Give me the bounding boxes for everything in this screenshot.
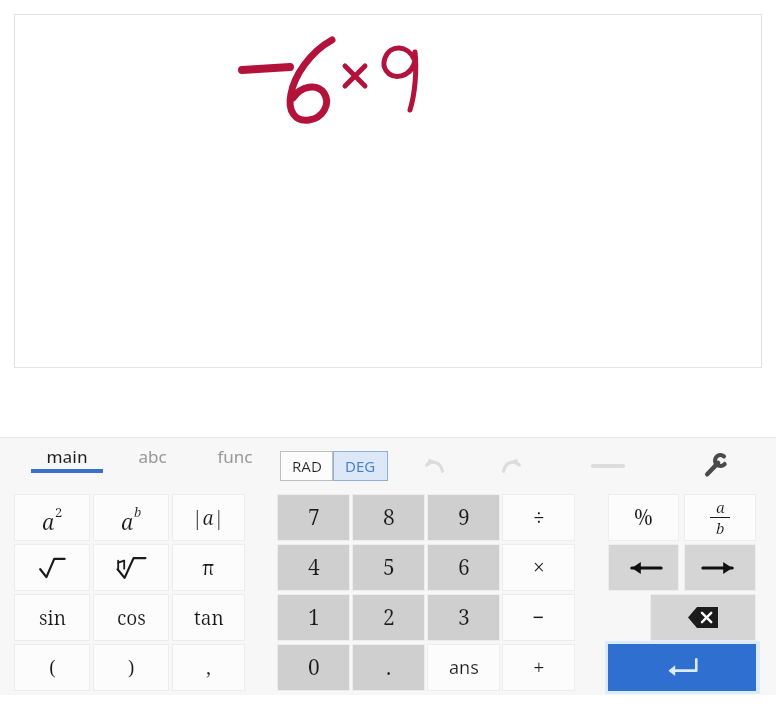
staticText: b (716, 518, 725, 538)
button[interactable]: Settings (690, 449, 740, 483)
button[interactable]: a (684, 494, 756, 541)
staticText: |a| (192, 505, 225, 531)
staticText: ans (449, 655, 479, 680)
button[interactable]: Backspace (650, 594, 756, 641)
staticText: func (217, 445, 253, 468)
button[interactable]: a (93, 494, 169, 541)
staticText: main (46, 445, 88, 468)
staticText: RAD (292, 456, 322, 476)
button[interactable]: . (352, 644, 425, 691)
button[interactable]: DEG (333, 451, 388, 481)
button[interactable]: % (608, 494, 679, 541)
button[interactable]: 3 (427, 594, 500, 641)
button[interactable]: ÷ (502, 494, 575, 541)
button[interactable]: 2 (352, 594, 425, 641)
staticText: 8 (383, 503, 395, 532)
button[interactable]: a (14, 494, 90, 541)
staticText: + (533, 653, 545, 682)
button[interactable]: ans (427, 644, 500, 691)
staticText: a (121, 508, 134, 537)
staticText: π (202, 555, 215, 581)
staticText: 1 (308, 603, 320, 632)
staticText: − (532, 603, 545, 632)
button[interactable]: 8 (352, 494, 425, 541)
staticText: × (533, 553, 545, 582)
button[interactable]: sin (14, 594, 90, 641)
staticText: cos (117, 605, 146, 631)
button[interactable]: main (30, 443, 104, 489)
button[interactable]: cos (93, 594, 169, 641)
staticText: 4 (308, 553, 320, 582)
button[interactable]: ( (14, 644, 90, 691)
button[interactable] (93, 544, 169, 591)
button[interactable]: Enter (608, 644, 756, 691)
staticText: 5 (383, 553, 395, 582)
button[interactable]: 4 (277, 544, 350, 591)
staticText: tan (194, 605, 224, 631)
button[interactable]: |a| (172, 494, 245, 541)
staticText: ) (128, 655, 135, 681)
button[interactable]: 9 (427, 494, 500, 541)
button[interactable]: More (578, 451, 638, 481)
staticText: 9 (458, 503, 470, 532)
staticText: 7 (308, 503, 320, 532)
staticText: ( (49, 655, 56, 681)
staticText: 0 (308, 653, 320, 682)
button[interactable]: − (502, 594, 575, 641)
button[interactable]: 0 (277, 644, 350, 691)
staticText: a (42, 508, 55, 537)
button[interactable]: 5 (352, 544, 425, 591)
button[interactable]: func (198, 443, 272, 489)
staticText: . (386, 653, 392, 682)
button[interactable]: Cursor right (684, 544, 756, 591)
button[interactable]: 1 (277, 594, 350, 641)
button[interactable]: + (502, 644, 575, 691)
button[interactable]: RAD (280, 451, 333, 481)
button[interactable]: Undo (412, 451, 456, 481)
button[interactable]: abc (115, 443, 189, 489)
button[interactable]: 6 (427, 544, 500, 591)
staticText: ÷ (533, 503, 545, 532)
staticText: 6 (458, 553, 470, 582)
staticText: a (716, 497, 725, 517)
button[interactable]: ) (93, 644, 169, 691)
staticText: 2 (383, 603, 395, 632)
button[interactable]: tan (172, 594, 245, 641)
staticText: , (206, 654, 211, 681)
staticText: DEG (345, 456, 376, 476)
button[interactable]: × (502, 544, 575, 591)
button[interactable]: , (172, 644, 245, 691)
staticText: 2 (55, 503, 63, 521)
staticText: b (134, 503, 142, 521)
staticText: sin (39, 605, 66, 631)
button[interactable]: 7 (277, 494, 350, 541)
staticText: abc (138, 445, 167, 468)
button[interactable] (14, 544, 90, 591)
staticText: % (634, 503, 653, 532)
button[interactable]: Cursor left (608, 544, 679, 591)
staticText: 3 (458, 603, 470, 632)
button[interactable]: Redo (490, 451, 534, 481)
button[interactable]: π (172, 544, 245, 591)
